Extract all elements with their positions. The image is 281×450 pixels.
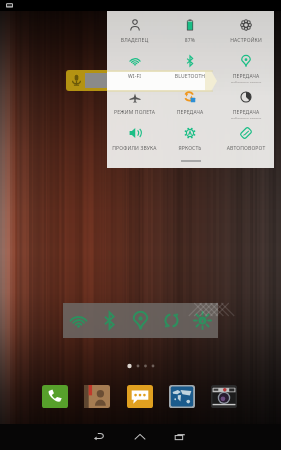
button[interactable]: ЯРКОСТЬ bbox=[162, 119, 218, 155]
staticText: ЯРКОСТЬ bbox=[162, 145, 218, 152]
button[interactable]: РЕЖИМ ПОЛЕТА bbox=[107, 83, 162, 119]
button[interactable]: ПЕРЕДАЧА bbox=[218, 47, 274, 83]
button[interactable]: Voice search widget bbox=[66, 70, 111, 91]
staticText: мобильные данные bbox=[218, 117, 274, 119]
staticText: НАСТРОЙКИ bbox=[218, 37, 274, 44]
button[interactable]: loc bbox=[125, 303, 156, 338]
staticText: 87% bbox=[162, 37, 218, 44]
button[interactable]: Browser bbox=[169, 385, 195, 408]
button[interactable]: bt bbox=[94, 303, 125, 338]
button[interactable]: wifi bbox=[63, 303, 94, 338]
button[interactable]: Camera bbox=[211, 385, 237, 408]
button[interactable]: ВЛАДЕЛЕЦ bbox=[107, 11, 162, 47]
staticText: WI-FI bbox=[107, 73, 162, 80]
button[interactable]: НАСТРОЙКИ bbox=[218, 11, 274, 47]
button[interactable]: Recents bbox=[169, 426, 191, 448]
staticText: BLUETOOTH bbox=[162, 73, 218, 80]
staticText: ВЛАДЕЛЕЦ bbox=[107, 37, 162, 44]
button[interactable]: bright bbox=[187, 303, 218, 338]
button[interactable]: Phone bbox=[42, 385, 68, 408]
button[interactable]: Contacts bbox=[84, 385, 110, 408]
staticText: ПЕРЕДАЧА bbox=[218, 109, 274, 116]
button[interactable]: ПРОФИЛИ ЗВУКА bbox=[107, 119, 162, 155]
button[interactable]: АВТОПОВОРОТ bbox=[218, 119, 274, 155]
button[interactable]: ПЕРЕДАЧА bbox=[162, 83, 218, 119]
staticText: АВТОПОВОРОТ bbox=[218, 145, 274, 152]
staticText: ПЕРЕДАЧА bbox=[218, 73, 274, 80]
button[interactable]: Back bbox=[88, 426, 110, 448]
button[interactable]: sync bbox=[156, 303, 187, 338]
button[interactable]: 87% bbox=[162, 11, 218, 47]
staticText: ПЕРЕДАЧА bbox=[162, 109, 218, 116]
button[interactable]: ПЕРЕДАЧА bbox=[218, 83, 274, 119]
button[interactable]: Messages bbox=[127, 385, 153, 408]
button[interactable]: Home bbox=[129, 426, 151, 448]
staticText: мобильные данные bbox=[218, 81, 274, 83]
button[interactable]: WI-FI bbox=[107, 47, 162, 83]
staticText: РЕЖИМ ПОЛЕТА bbox=[107, 109, 162, 116]
staticText: ПРОФИЛИ ЗВУКА bbox=[107, 145, 162, 152]
button[interactable]: BLUETOOTH bbox=[162, 47, 218, 83]
